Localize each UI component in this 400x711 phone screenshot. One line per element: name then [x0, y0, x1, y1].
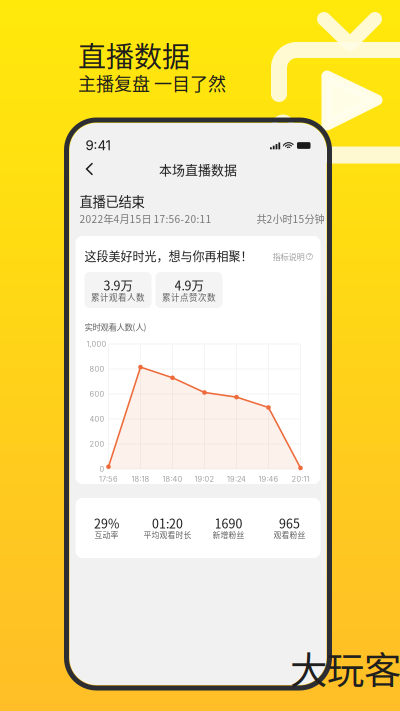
staticText: 指标说明: [272, 250, 304, 262]
staticText: 0: [99, 464, 104, 473]
staticText: 直播数据: [78, 35, 190, 75]
staticText: 18:40: [162, 474, 182, 483]
button[interactable]: 指标说明: [272, 250, 313, 262]
staticText: 这段美好时光，想与你再相聚！: [84, 247, 252, 265]
staticText: 大玩客: [290, 641, 400, 695]
button[interactable]: Back: [76, 157, 102, 181]
staticText: 400: [89, 414, 104, 423]
staticText: 1690: [214, 514, 242, 532]
staticText: 共2小时15分钟: [256, 211, 324, 226]
staticText: 互动率: [94, 529, 118, 540]
staticText: 19:24: [227, 474, 246, 483]
staticText: 累计观看人数: [91, 291, 145, 303]
staticText: 实时观看人数(人): [84, 320, 146, 333]
staticText: 200: [89, 439, 104, 448]
staticText: 17:56: [99, 474, 118, 483]
staticText: ?: [308, 253, 311, 260]
staticText: 3.9万: [103, 276, 132, 294]
staticText: 600: [89, 389, 104, 398]
staticText: 平均观看时长: [143, 529, 191, 540]
staticText: 主播复盘 一目了然: [78, 70, 226, 96]
staticText: 01:20: [152, 514, 183, 532]
staticText: 4.9万: [174, 276, 203, 294]
staticText: 累计点赞次数: [162, 291, 216, 303]
staticText: 800: [89, 364, 104, 373]
staticText: 直播已结束: [79, 191, 144, 211]
staticText: 2022年4月15日 17:56-20:11: [79, 211, 211, 226]
staticText: 18:18: [131, 474, 149, 483]
staticText: 新增粉丝: [212, 529, 244, 540]
staticText: 1,000: [86, 339, 106, 348]
staticText: 29%: [94, 514, 119, 532]
staticText: 本场直播数据: [159, 160, 237, 178]
staticText: 观看粉丝: [273, 529, 305, 540]
staticText: 20:11: [291, 474, 309, 483]
staticText: 19:46: [258, 474, 278, 483]
staticText: 965: [279, 514, 300, 532]
staticText: 9:41: [85, 137, 110, 153]
staticText: 19:02: [194, 474, 214, 483]
